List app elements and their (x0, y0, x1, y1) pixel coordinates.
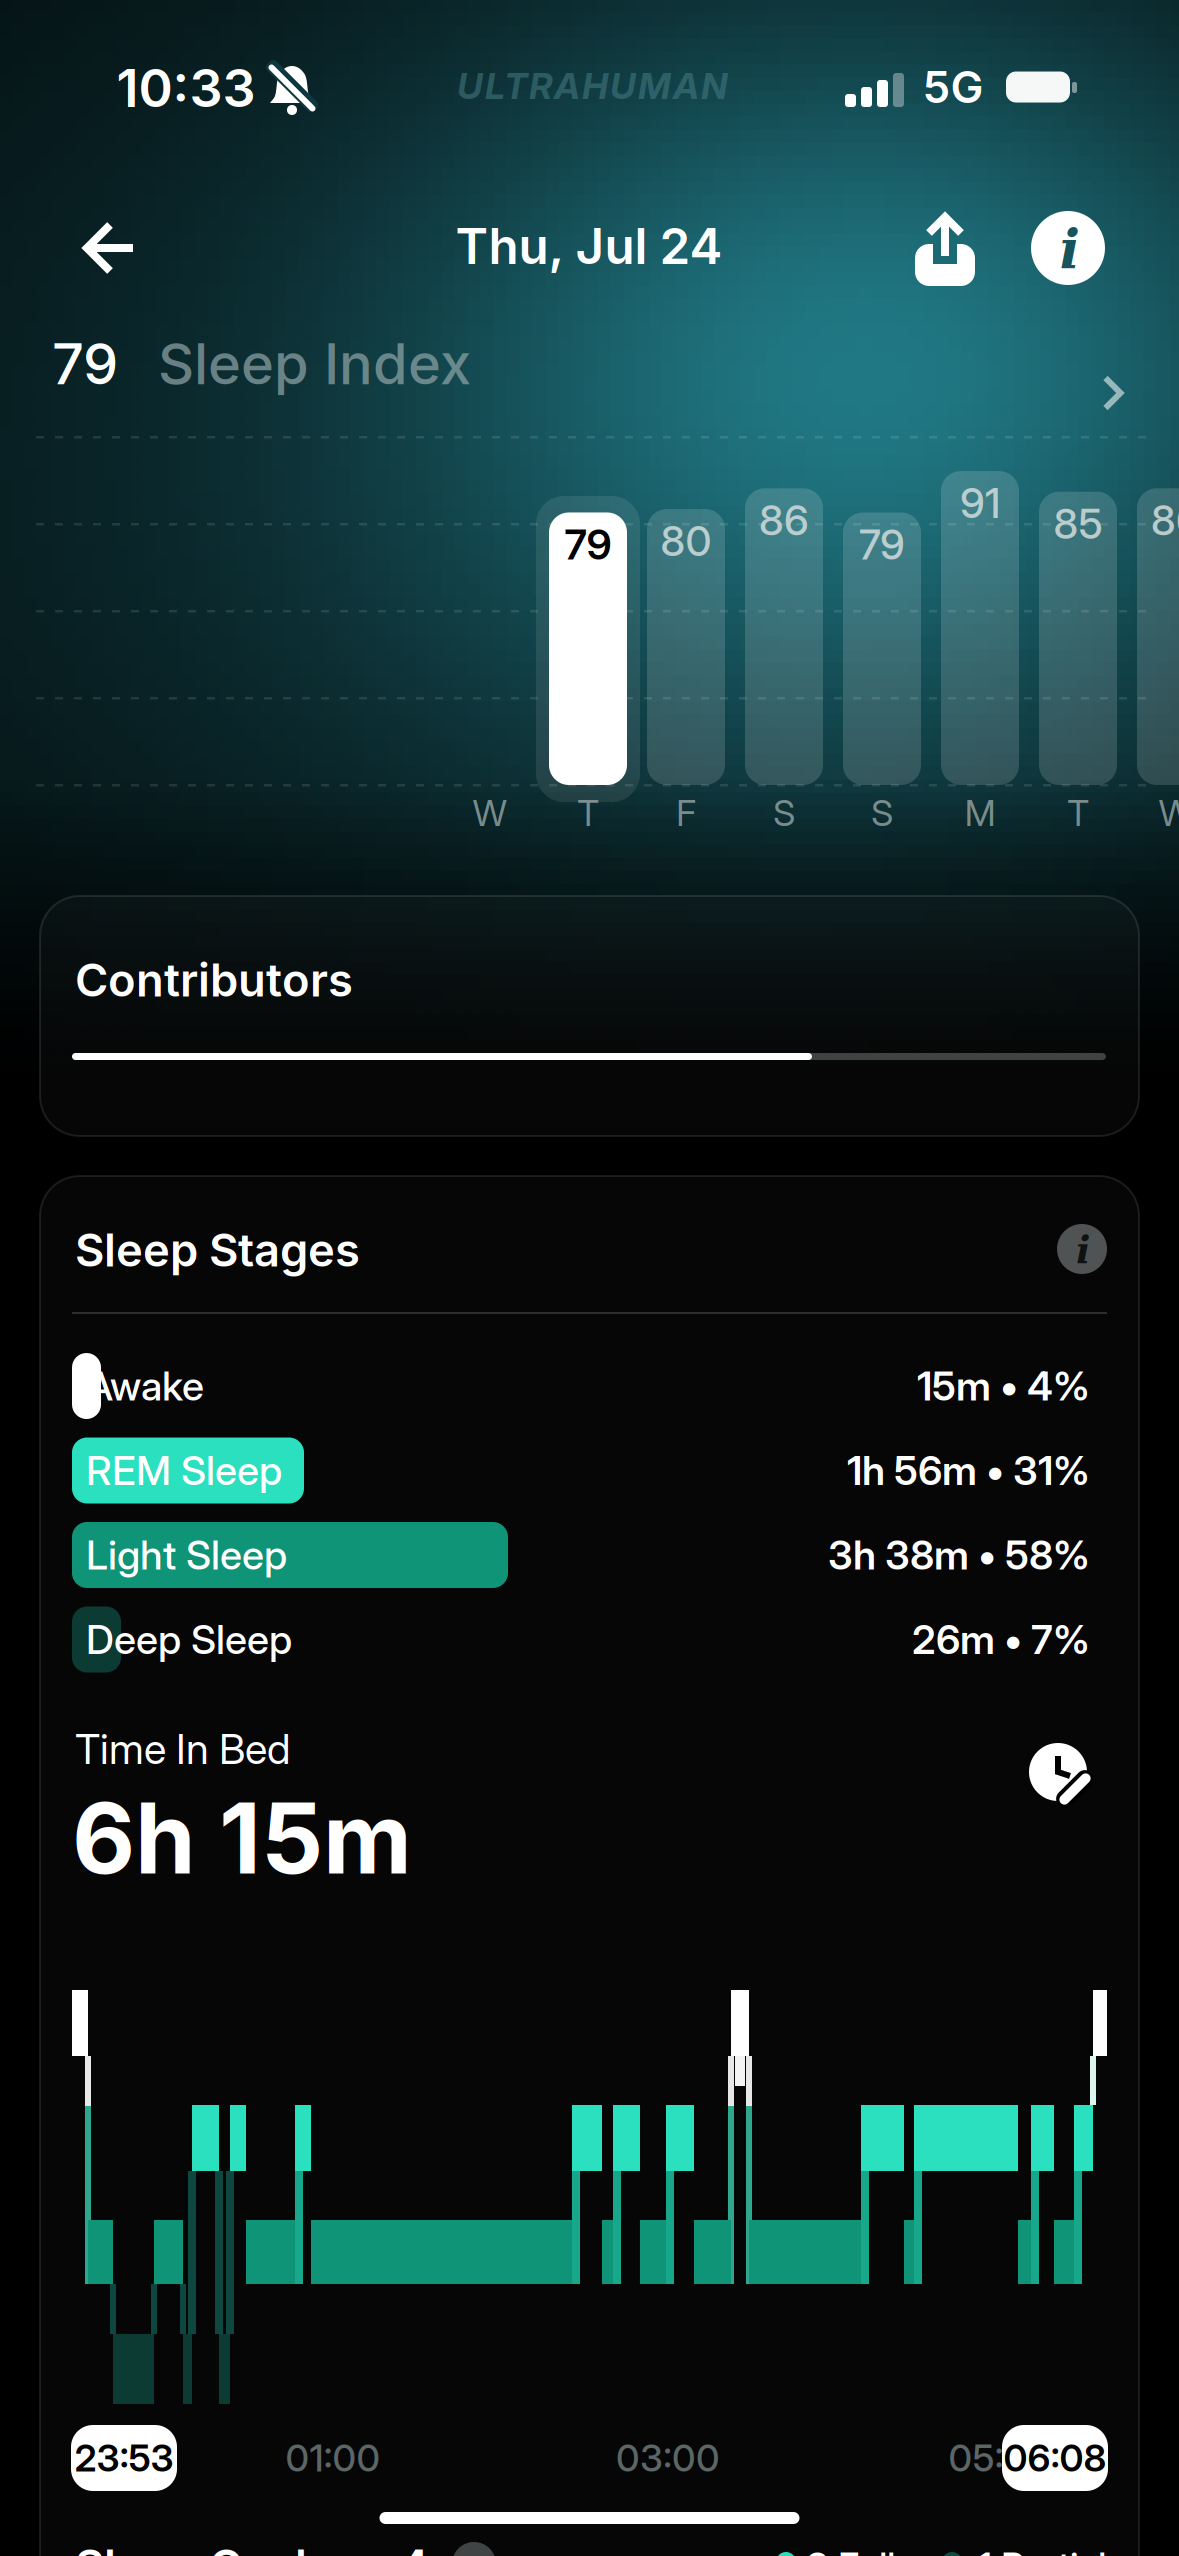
staticText: 1 Partial (978, 2544, 1106, 2556)
staticText: 79 (564, 520, 611, 569)
staticText: 15m • 4% (917, 1362, 1090, 1410)
staticText: Time In Bed (75, 1725, 290, 1773)
staticText: 1h 56m • 31% (847, 1447, 1090, 1494)
staticText: 4 (399, 2539, 429, 2556)
staticText: ULTRAHUMAN (457, 64, 727, 108)
button[interactable] (82, 221, 138, 275)
staticText: M (964, 792, 995, 834)
button[interactable]: 79 (0, 298, 1179, 428)
staticText: Awake (86, 1362, 204, 1410)
staticText: REM Sleep (86, 1447, 282, 1494)
button[interactable]: i (1057, 1224, 1107, 1274)
staticText: 10:33 (116, 57, 255, 119)
staticText: Light Sleep (86, 1531, 287, 1579)
staticText: 80 (660, 517, 711, 565)
staticText: 06:08 (1003, 2436, 1106, 2480)
staticText: 79 (859, 520, 905, 569)
staticText: 01:00 (285, 2436, 380, 2480)
staticText: Thu, Jul 24 (455, 217, 722, 275)
staticText: Sleep Cycles (75, 2539, 359, 2556)
staticText: Sleep Index (158, 331, 471, 397)
staticText: 86 (1151, 496, 1179, 545)
staticText: W (472, 792, 507, 834)
staticText: i (1076, 1228, 1090, 1272)
button[interactable]: i (1031, 211, 1105, 285)
staticText: T (1067, 792, 1089, 834)
staticText: 3h 38m • 58% (828, 1531, 1090, 1579)
staticText: 05:00 (948, 2436, 1051, 2480)
staticText: i (1059, 217, 1080, 281)
staticText: 91 (960, 479, 1000, 527)
button[interactable]: 85 (1039, 492, 1117, 785)
button[interactable]: 91 (941, 471, 1019, 785)
button[interactable] (1029, 1743, 1087, 1801)
staticText: 3 Full (806, 2544, 895, 2556)
staticText: W (1158, 792, 1179, 834)
staticText: Sleep Stages (75, 1223, 360, 1277)
staticText: 6h 15m (72, 1781, 412, 1895)
staticText: S (773, 792, 795, 834)
button[interactable]: 79 (549, 512, 627, 785)
staticText: T (577, 792, 599, 834)
staticText: 23:53 (74, 2436, 173, 2480)
button[interactable]: 79 (843, 512, 921, 785)
staticText: 86 (759, 496, 809, 545)
staticText: S (871, 792, 893, 834)
staticText: 26m • 7% (912, 1616, 1090, 1663)
staticText: F (676, 792, 696, 834)
staticText: 79 (52, 331, 118, 397)
button[interactable] (913, 212, 977, 288)
staticText: 85 (1053, 499, 1102, 548)
staticText: Contributors (75, 953, 353, 1007)
staticText: 03:00 (616, 2436, 720, 2480)
staticText: 5G (922, 61, 983, 113)
button[interactable] (452, 2542, 496, 2556)
button[interactable]: 86 (1137, 488, 1179, 785)
staticText: Deep Sleep (86, 1616, 292, 1663)
button[interactable]: 80 (647, 509, 725, 785)
button[interactable]: 86 (745, 488, 823, 785)
